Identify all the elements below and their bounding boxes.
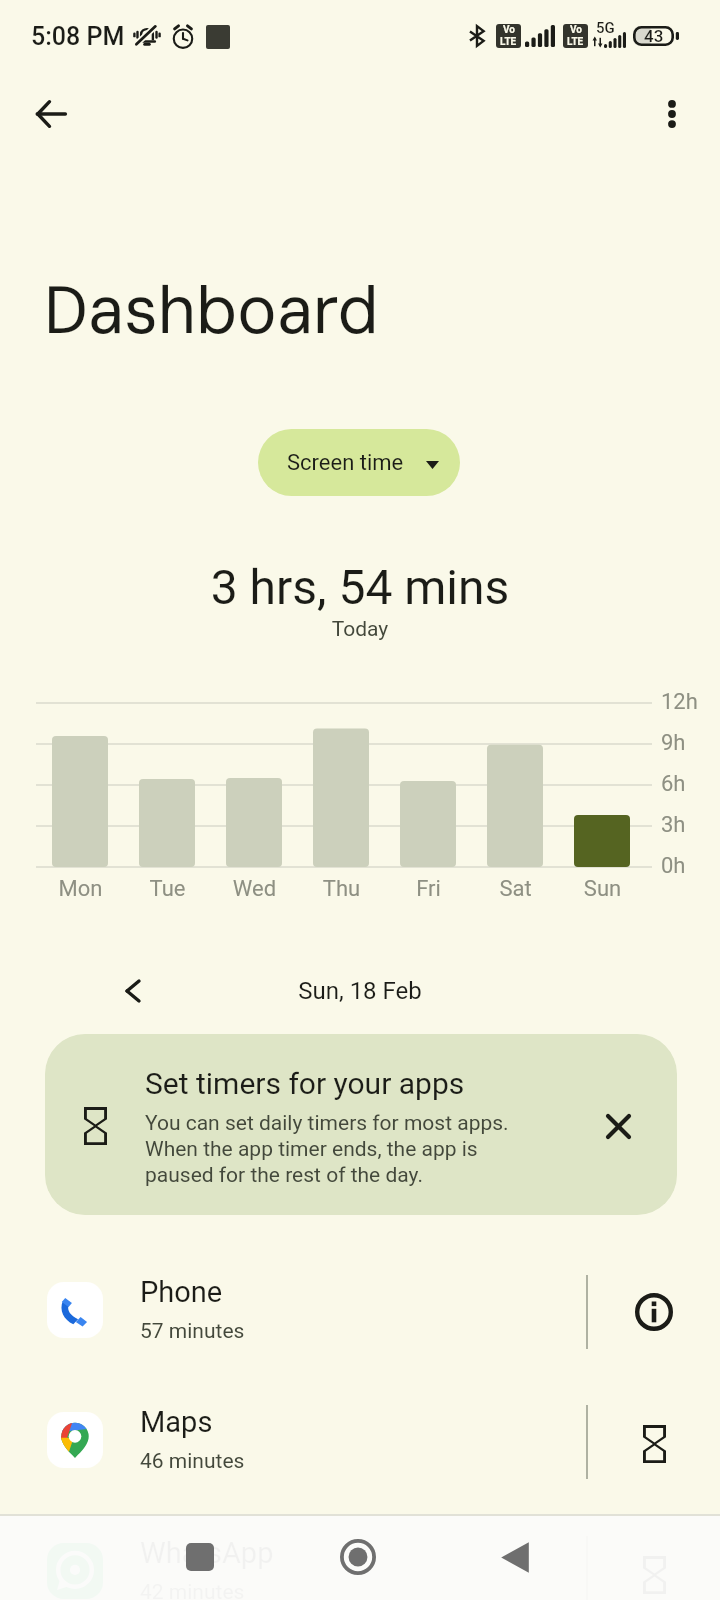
staticText: Phone [140, 1275, 223, 1309]
button[interactable]: Set timer [610, 1396, 698, 1484]
staticText: 9h [661, 730, 686, 756]
button[interactable]: App info [610, 1266, 698, 1354]
button[interactable]: Set timers for your apps [45, 1034, 677, 1215]
button[interactable]: Back [475, 1517, 555, 1597]
staticText: Maps [140, 1405, 213, 1439]
staticText: 46 minutes [140, 1449, 245, 1474]
button[interactable]: Recent apps [160, 1517, 240, 1597]
staticText: Sun, 18 Feb [0, 977, 720, 1005]
staticText: Fri [385, 876, 472, 902]
staticText: 3h [661, 812, 686, 838]
staticText: Thu [298, 876, 385, 902]
staticText: Tue [124, 876, 211, 902]
staticText: 0h [661, 853, 686, 879]
button[interactable]: Maps [0, 1394, 720, 1486]
staticText: 6h [661, 771, 686, 797]
staticText: 43 [644, 26, 664, 46]
staticText: 5G [596, 19, 615, 37]
staticText: Vo [570, 24, 582, 36]
staticText: 12h [661, 689, 698, 715]
staticText: 3 hrs, 54 mins [0, 559, 720, 615]
staticText: Wed [211, 876, 298, 902]
button[interactable]: Back [18, 81, 84, 147]
staticText: Sat [472, 876, 559, 902]
staticText: 5:08 PM [31, 22, 125, 51]
button[interactable]: Home [318, 1517, 398, 1597]
staticText: Vo [503, 24, 515, 36]
button[interactable]: WhatsApp [0, 1525, 720, 1600]
staticText: Sun [559, 876, 646, 902]
staticText: 57 minutes [140, 1319, 245, 1344]
staticText: Dashboard [44, 268, 379, 354]
button[interactable]: Previous day [105, 963, 161, 1019]
staticText: LTE [500, 36, 517, 48]
staticText: LTE [567, 36, 584, 48]
button[interactable]: More options [639, 81, 705, 147]
button[interactable]: Screen time [258, 429, 460, 496]
staticText: Mon [37, 876, 124, 902]
staticText: Screen time [287, 450, 404, 476]
staticText: Today [0, 617, 720, 642]
staticText: Set timers for your apps [145, 1066, 465, 1101]
staticText: You can set daily timers for most apps. … [145, 1111, 509, 1187]
button[interactable]: Phone [0, 1264, 720, 1356]
staticText: WhatsApp [140, 1536, 274, 1570]
button[interactable]: Dismiss [590, 1098, 646, 1154]
